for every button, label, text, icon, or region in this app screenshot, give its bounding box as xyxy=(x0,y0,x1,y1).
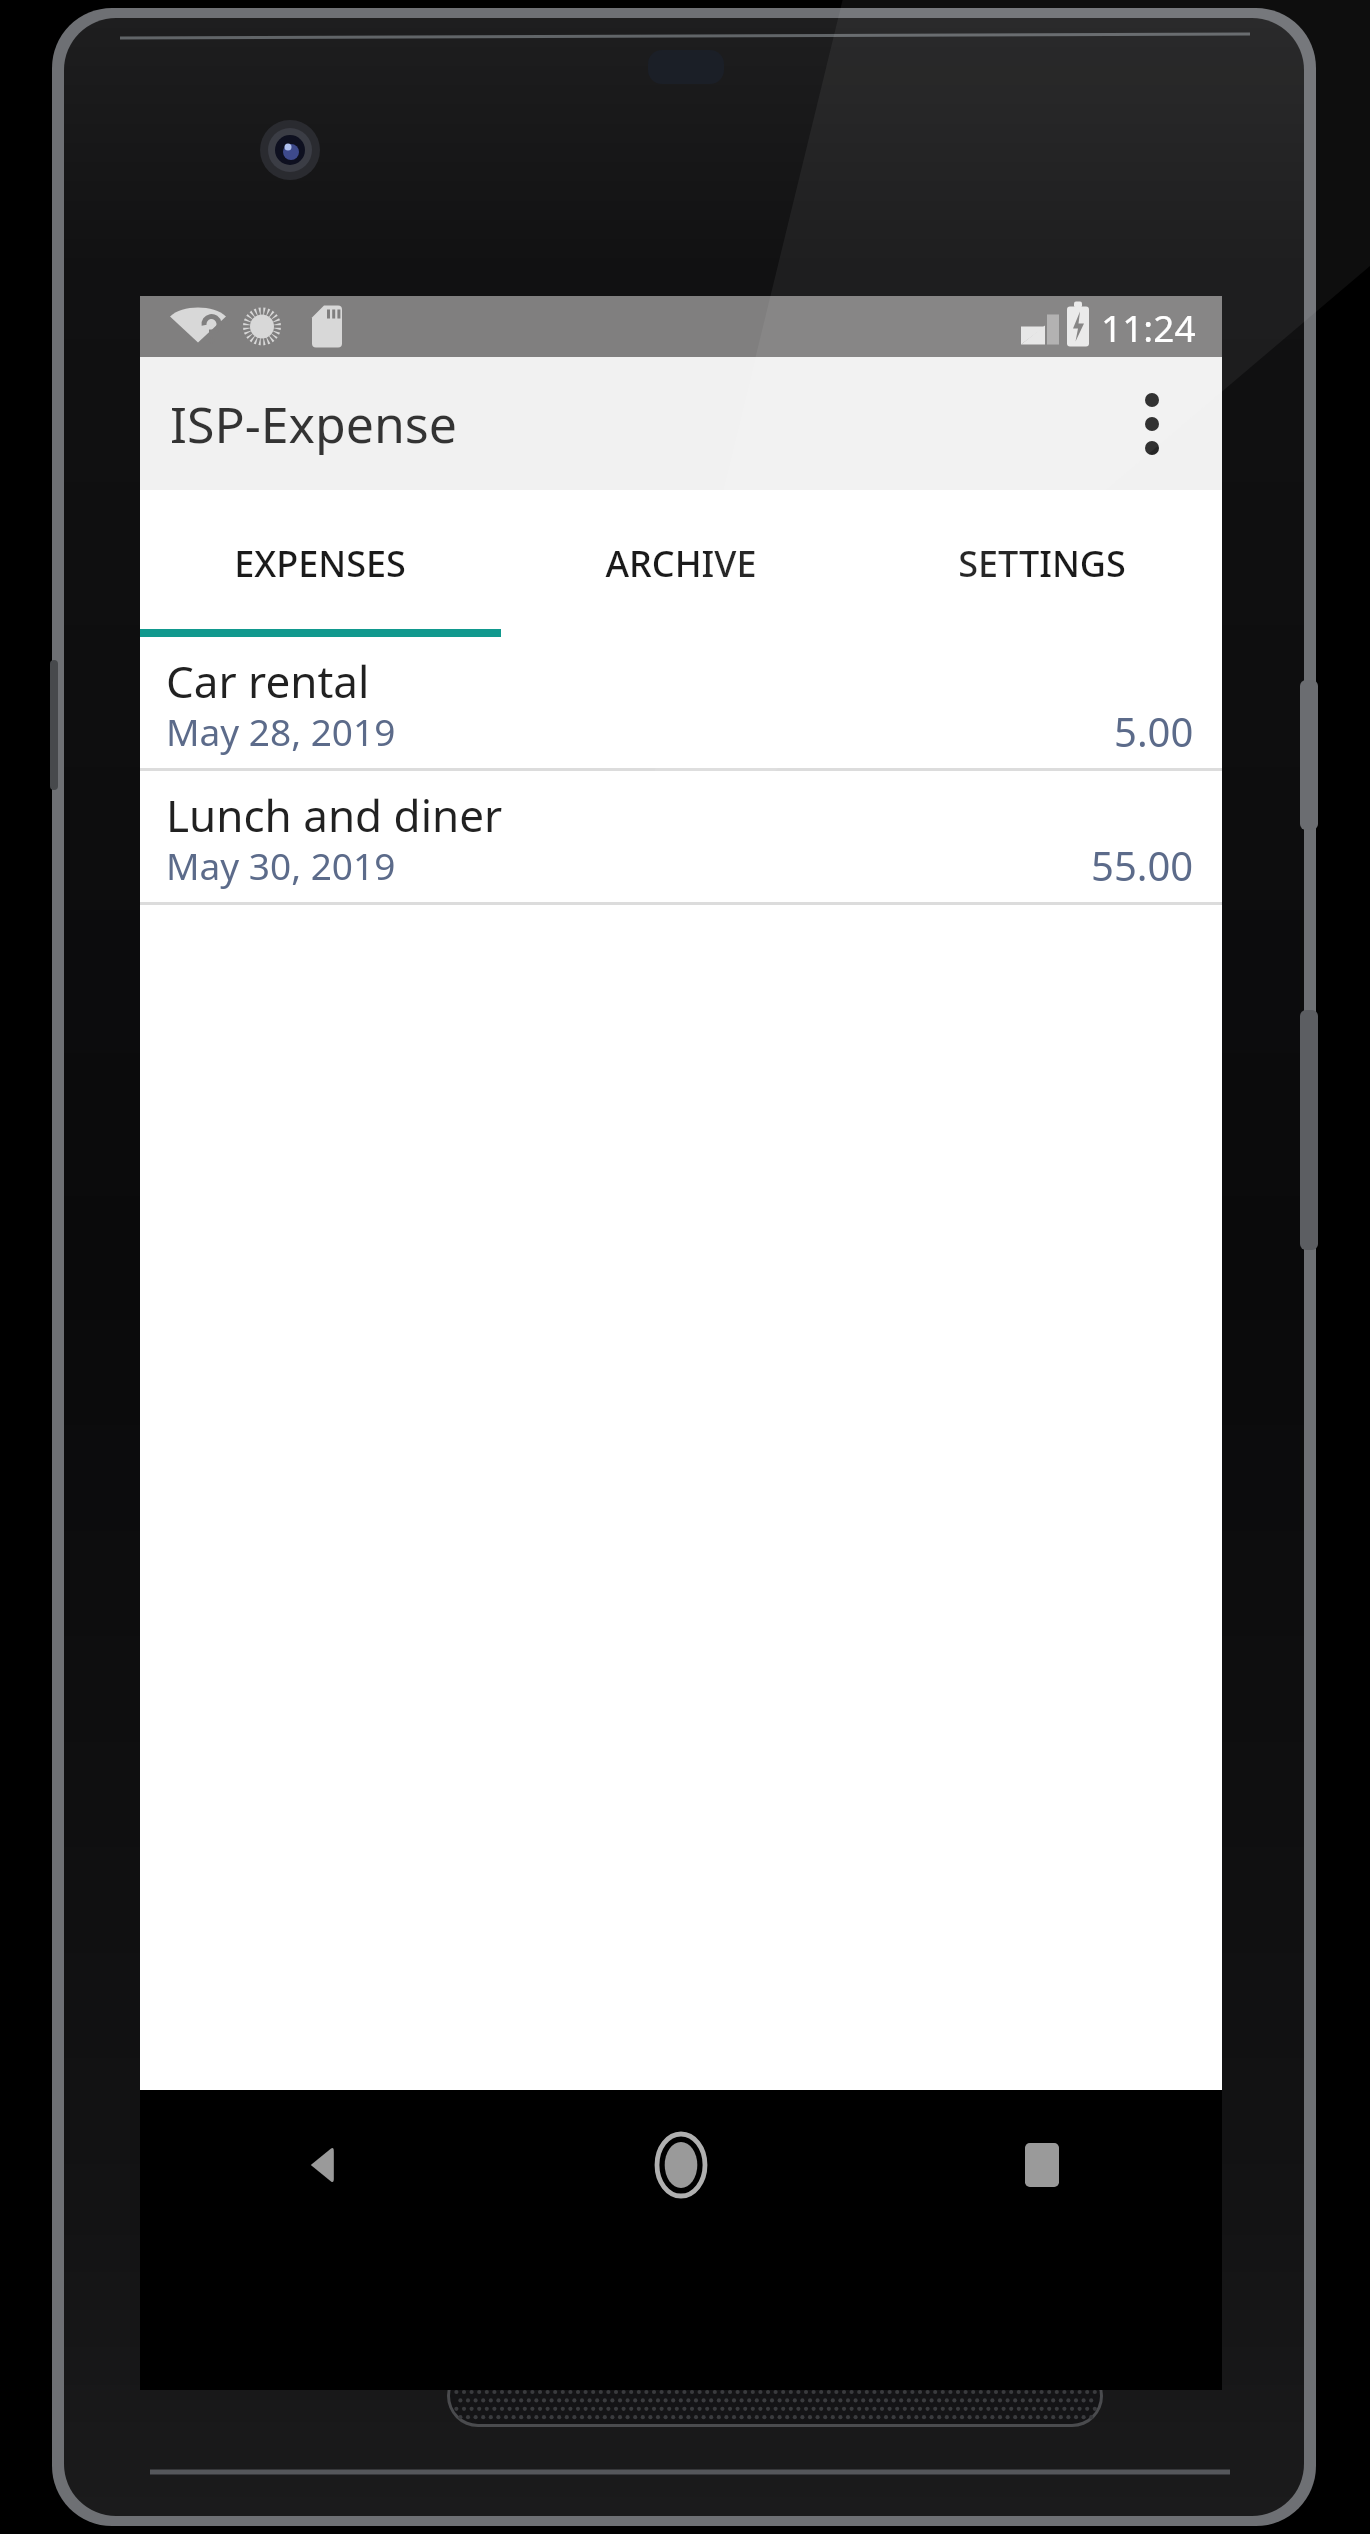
staticText: 11:24 xyxy=(1101,302,1196,352)
button[interactable]: Recent apps xyxy=(861,2090,1222,2240)
staticText: SETTINGS xyxy=(958,539,1126,588)
staticText: EXPENSES xyxy=(234,539,406,588)
staticText: Car rental xyxy=(166,651,370,711)
staticText: 55.00 xyxy=(1091,838,1194,892)
button[interactable]: Back xyxy=(140,2090,500,2240)
button[interactable]: Lunch and diner xyxy=(140,771,1222,905)
staticText: May 28, 2019 xyxy=(166,706,396,756)
button[interactable]: ARCHIVE xyxy=(500,490,861,637)
button[interactable]: EXPENSES xyxy=(140,490,500,637)
button[interactable]: SETTINGS xyxy=(861,490,1222,637)
staticText: ISP-Expense xyxy=(170,390,457,458)
button[interactable]: Home xyxy=(500,2090,861,2240)
staticText: ARCHIVE xyxy=(605,539,757,588)
button[interactable]: More options xyxy=(1104,376,1200,472)
button[interactable]: Car rental xyxy=(140,637,1222,771)
staticText: Lunch and diner xyxy=(166,785,503,845)
staticText: 5.00 xyxy=(1114,704,1194,758)
staticText: May 30, 2019 xyxy=(166,840,396,890)
